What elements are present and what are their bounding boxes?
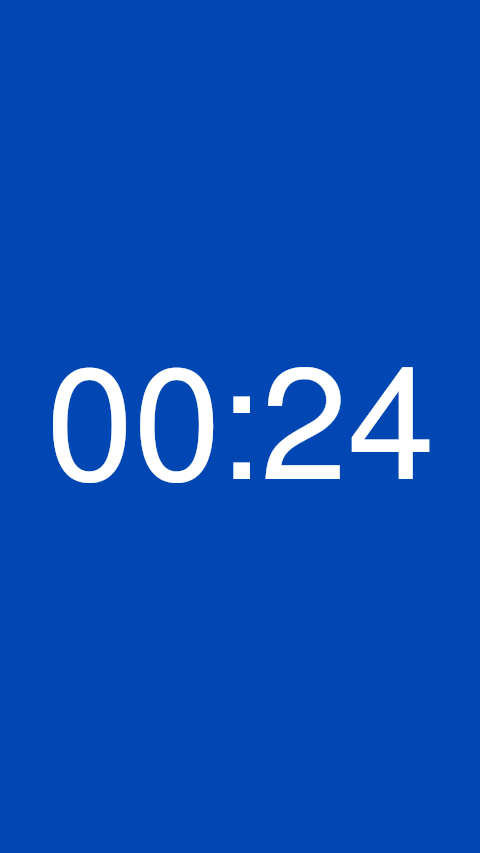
staticText: 00:24 [46, 353, 435, 510]
button[interactable]: Countdown timer, 24 seconds remaining [0, 0, 480, 853]
